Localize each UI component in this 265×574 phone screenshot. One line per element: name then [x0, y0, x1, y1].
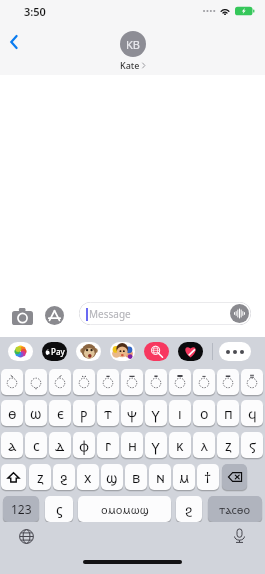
- staticText: ⲑ: [8, 404, 17, 423]
- staticText: ⲟ: [200, 404, 209, 423]
- button[interactable]: Camera: [11, 305, 34, 328]
- staticText: ⲩ: [152, 436, 160, 455]
- staticText: ⲕ: [176, 436, 184, 455]
- button[interactable]: †: [197, 464, 219, 490]
- button[interactable]: ⲧⲁⲥⲑⲟ: [208, 496, 262, 522]
- button[interactable]: ⲇ: [49, 432, 71, 458]
- button[interactable]: More apps: [219, 342, 251, 361]
- button[interactable]: Message: [79, 302, 251, 325]
- staticText: ⲥ: [33, 436, 40, 455]
- staticText: ⲏ: [128, 436, 137, 455]
- staticText: ⲟⲙⲟⲙⲱϣ: [101, 502, 149, 517]
- staticText: Kate: [120, 59, 140, 71]
- button[interactable]: ⲫ: [73, 432, 95, 458]
- button[interactable]: ⲛ: [149, 464, 171, 490]
- button[interactable]: Memoji 2: [110, 342, 135, 361]
- button[interactable]: ϛ: [45, 496, 73, 522]
- button[interactable]: ⲟ: [193, 400, 215, 426]
- staticText: ⲩ: [152, 404, 160, 423]
- staticText: ⲧⲁⲥⲑⲟ: [219, 502, 251, 517]
- staticText: ⳉ: [60, 468, 68, 487]
- button[interactable]: Diacritic: [121, 369, 143, 395]
- button[interactable]: ⲃ: [125, 464, 147, 490]
- button[interactable]: ⲅ: [97, 432, 119, 458]
- staticText: ⲣ: [80, 404, 88, 423]
- button[interactable]: ⲱ: [25, 400, 47, 426]
- button[interactable]: Diacritic: [25, 369, 47, 395]
- button[interactable]: ⲑ: [1, 400, 23, 426]
- staticText: ⲱ: [30, 404, 42, 423]
- button[interactable]: ⲓ: [169, 400, 191, 426]
- button[interactable]: Shift: [1, 464, 26, 490]
- button[interactable]: ⲥ: [25, 432, 47, 458]
- button[interactable]: Dictation: [229, 526, 249, 546]
- staticText: ⲁ: [8, 436, 17, 455]
- button[interactable]: ⲟⲙⲟⲙⲱϣ: [78, 496, 171, 522]
- staticText: ⲍ: [225, 436, 232, 455]
- button[interactable]: Memoji: [76, 342, 101, 361]
- staticText: ⲇ: [55, 436, 65, 455]
- staticText: ⲯ: [127, 404, 137, 423]
- button[interactable]: ⲍ: [217, 432, 239, 458]
- staticText: ⲡ: [224, 404, 233, 423]
- button[interactable]: ⲡ: [217, 400, 239, 426]
- staticText: 123: [11, 501, 32, 517]
- staticText: ⲛ: [156, 468, 165, 487]
- button[interactable]: App Store: [44, 305, 65, 326]
- button[interactable]: Diacritic: [145, 369, 167, 395]
- staticText: ⲙ: [179, 468, 190, 487]
- staticText: KB: [126, 37, 140, 52]
- button[interactable]: ⲕ: [169, 432, 191, 458]
- button[interactable]: ⲏ: [121, 432, 143, 458]
- staticText: ⲗ: [201, 436, 208, 455]
- button[interactable]: ⲙ: [173, 464, 195, 490]
- button[interactable]: ⲩ: [145, 432, 167, 458]
- staticText: ϩ: [185, 500, 193, 519]
- button[interactable]: ⲍ: [29, 464, 51, 490]
- staticText: ⲫ: [79, 436, 90, 455]
- button[interactable]: Diacritic: [241, 369, 263, 395]
- staticText: ⲧ: [104, 404, 112, 423]
- button[interactable]: ⲭ: [77, 464, 99, 490]
- button[interactable]: Diacritic: [97, 369, 119, 395]
- button[interactable]: Switch keyboard: [16, 526, 36, 546]
- button[interactable]: ϥ: [241, 400, 263, 426]
- button[interactable]: 123: [3, 496, 39, 522]
- button[interactable]: Digital touch: [178, 342, 203, 361]
- button[interactable]: Diacritic: [169, 369, 191, 395]
- button[interactable]: ⲣ: [73, 400, 95, 426]
- staticText: Message: [89, 307, 131, 321]
- button[interactable]: Diacritic: [193, 369, 215, 395]
- button[interactable]: Apple Pay: [42, 342, 67, 361]
- staticText: †: [204, 468, 212, 487]
- button[interactable]: Diacritic: [49, 369, 71, 395]
- button[interactable]: ϩ: [176, 496, 202, 522]
- button[interactable]: KB: [120, 31, 146, 71]
- button[interactable]: ⲗ: [193, 432, 215, 458]
- button[interactable]: Diacritic: [73, 369, 95, 395]
- button[interactable]: ⲯ: [121, 400, 143, 426]
- staticText: ⲭ: [84, 468, 92, 487]
- button[interactable]: ⲁ: [1, 432, 23, 458]
- button[interactable]: ϣ: [101, 464, 123, 490]
- button[interactable]: ⲩ: [145, 400, 167, 426]
- staticText: ⲅ: [105, 436, 112, 455]
- button[interactable]: ⲧ: [97, 400, 119, 426]
- staticText: ⲍ: [37, 468, 44, 487]
- button[interactable]: ⳉ: [53, 464, 75, 490]
- button[interactable]: ⲋ: [241, 432, 263, 458]
- staticText: ϣ: [106, 468, 118, 487]
- button[interactable]: ⲉ: [49, 400, 71, 426]
- staticText: Pay: [51, 346, 65, 357]
- button[interactable]: Audio message: [230, 304, 249, 323]
- staticText: ⲋ: [249, 436, 256, 455]
- staticText: ⲓ: [178, 404, 182, 423]
- button[interactable]: Diacritic: [217, 369, 239, 395]
- button[interactable]: Diacritic: [1, 369, 23, 395]
- button[interactable]: Backspace: [222, 464, 247, 490]
- button[interactable]: Image search: [144, 342, 169, 361]
- button[interactable]: Back: [1, 29, 27, 55]
- staticText: ϛ: [56, 500, 63, 519]
- button[interactable]: Photos: [8, 342, 33, 361]
- staticText: ϥ: [248, 404, 257, 423]
